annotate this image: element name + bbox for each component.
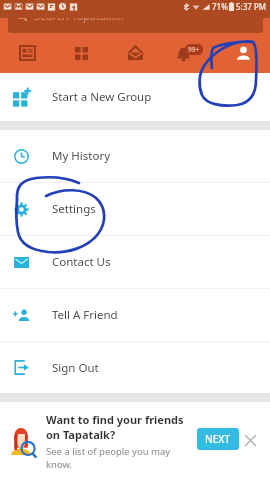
staticText: Search Tapatalk... xyxy=(34,8,124,23)
button[interactable]: Messages xyxy=(108,33,162,73)
button[interactable]: Start a New Group xyxy=(0,73,270,121)
staticText: Want to find your friends xyxy=(46,412,184,427)
staticText: 71% xyxy=(212,1,228,12)
staticText: See a list of people you may xyxy=(46,445,171,458)
staticText: Sign Out xyxy=(52,360,99,376)
button[interactable]: Sign Out xyxy=(0,342,270,393)
staticText: Settings xyxy=(52,201,96,217)
button[interactable]: NEXT xyxy=(197,428,239,450)
staticText: 5:37 PM xyxy=(236,1,267,12)
staticText: Contact Us xyxy=(52,254,111,270)
button[interactable]: Profile xyxy=(216,33,270,73)
staticText: know. xyxy=(46,458,73,471)
button[interactable]: Tell A Friend xyxy=(0,289,270,341)
button[interactable]: My History xyxy=(0,130,270,182)
button[interactable]: Settings xyxy=(0,183,270,235)
button[interactable]: Search Tapatalk xyxy=(8,0,263,33)
button[interactable]: Dismiss xyxy=(240,430,260,450)
staticText: Tell A Friend xyxy=(52,307,118,323)
staticText: My History xyxy=(52,148,111,164)
staticText: NEXT xyxy=(205,432,231,446)
button[interactable]: Contact Us xyxy=(0,236,270,288)
staticText: 99+ xyxy=(188,45,200,54)
staticText: on Tapatalk? xyxy=(46,427,116,442)
button[interactable]: Notifications xyxy=(162,33,216,73)
button[interactable]: Groups xyxy=(54,33,108,73)
button[interactable]: Feed xyxy=(0,33,54,73)
staticText: Start a New Group xyxy=(52,89,152,105)
